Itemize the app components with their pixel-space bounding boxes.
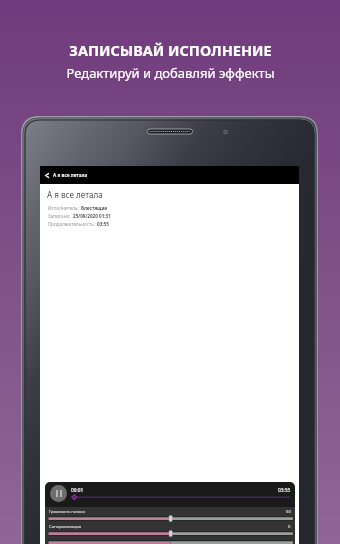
- staticText: Синхронизация: [49, 524, 82, 530]
- button[interactable]: Синхронизация: [45, 522, 295, 537]
- staticText: Записано:: [48, 213, 71, 219]
- button[interactable]: Seek position: [45, 482, 295, 507]
- staticText: А я все летала: [47, 189, 103, 200]
- staticText: Блестящие: [81, 205, 108, 211]
- staticText: ЗАПИСЫВАЙ ИСПОЛНЕНИЕ: [69, 40, 272, 60]
- button[interactable]: Back: [40, 166, 299, 184]
- button[interactable]: Pause: [50, 485, 67, 502]
- staticText: А я все летала: [53, 172, 88, 179]
- staticText: Продолжительность:: [48, 221, 95, 227]
- button[interactable]: Back: [40, 166, 54, 184]
- staticText: 25/09/2020 01:31: [73, 213, 111, 219]
- staticText: 0: [288, 524, 291, 530]
- staticText: 50: [286, 509, 291, 515]
- button[interactable]: [45, 537, 295, 544]
- button[interactable]: Громкость голоса: [45, 507, 295, 522]
- staticText: 03:55: [278, 487, 291, 494]
- staticText: Редактируй и добавляй эффекты: [66, 64, 275, 82]
- staticText: Громкость голоса: [49, 509, 85, 515]
- staticText: Исполнитель:: [48, 205, 79, 211]
- staticText: 03:55: [97, 221, 109, 227]
- staticText: 00:01: [71, 487, 84, 494]
